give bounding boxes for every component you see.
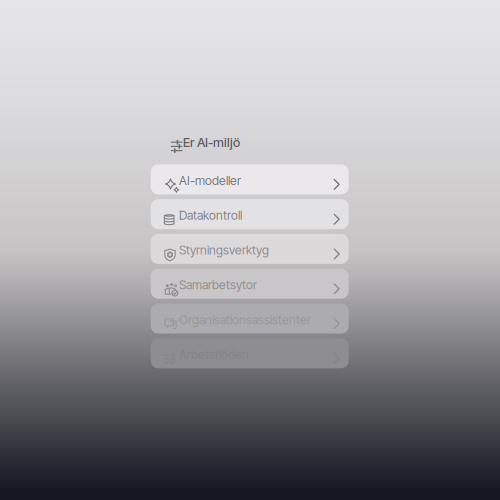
button[interactable]: AI-modeller (151, 164, 349, 194)
button[interactable]: Organisationsassistenter (151, 303, 349, 333)
button[interactable]: Styrningsverktyg (151, 234, 349, 264)
staticText: AI-modeller (179, 173, 241, 188)
staticText: Arbetsflöden (179, 347, 249, 362)
button[interactable]: Samarbetsytor (151, 269, 349, 299)
staticText: Organisationsassistenter (179, 312, 311, 327)
staticText: Datakontroll (179, 208, 242, 223)
staticText: Er AI-miljö (183, 135, 240, 150)
staticText: Samarbetsytor (179, 277, 257, 292)
button[interactable]: Datakontroll (151, 199, 349, 229)
staticText: Styrningsverktyg (179, 243, 269, 257)
